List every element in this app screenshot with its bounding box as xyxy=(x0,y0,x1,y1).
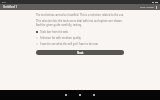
staticText: I want to see what this will get I have … xyxy=(40,42,98,46)
button[interactable]: Recent apps xyxy=(91,92,97,98)
staticText: And the given guide carefully, testing. xyxy=(36,23,82,27)
staticText: Selection list with medium quality xyxy=(40,36,81,40)
button[interactable]: Home xyxy=(77,92,83,98)
button[interactable]: Back xyxy=(63,92,69,98)
button[interactable]: Next xyxy=(36,50,124,55)
button[interactable]: I want to see what this will get I have … xyxy=(36,41,124,46)
button[interactable]: Tools bar from the web xyxy=(36,29,124,34)
staticText: Next xyxy=(77,51,84,55)
staticText: Tools bar from the web xyxy=(40,30,69,34)
staticText: 9:41 xyxy=(2,1,7,4)
button[interactable]: Selection list with medium quality xyxy=(36,35,124,40)
staticText: Untitled 1 xyxy=(3,5,18,9)
staticText: This selection lets the tools users deal… xyxy=(36,19,123,23)
staticText: The text below cannot be classified. Thi… xyxy=(36,13,124,17)
staticText: SAVE SHARE xyxy=(140,6,154,9)
